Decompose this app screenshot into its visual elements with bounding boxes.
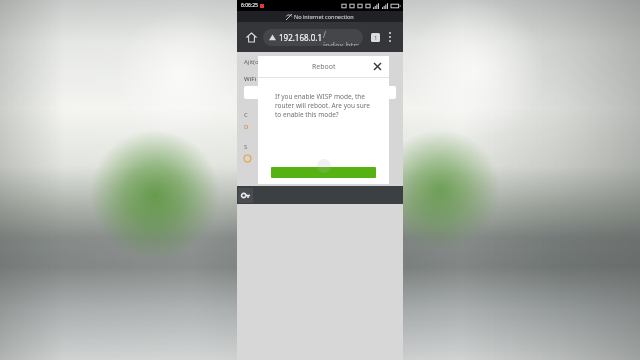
button[interactable]: Passwords bbox=[237, 186, 403, 204]
button[interactable] bbox=[271, 167, 376, 178]
button[interactable]: Passwords bbox=[238, 188, 253, 203]
button[interactable]: Home bbox=[243, 29, 259, 45]
staticText: If you enable WISP mode, the router will… bbox=[275, 92, 375, 119]
staticText: No internet connection bbox=[294, 13, 354, 20]
button[interactable]: 192.168.0.1 bbox=[263, 29, 363, 46]
button[interactable] bbox=[244, 86, 396, 99]
staticText: C bbox=[244, 111, 248, 119]
staticText: /index.htm bbox=[323, 29, 363, 46]
staticText: WiFi Password bbox=[244, 75, 286, 83]
button[interactable]: More options bbox=[383, 30, 397, 44]
button[interactable]: Close bbox=[371, 60, 384, 73]
staticText: 192.168.0.1 bbox=[279, 32, 323, 43]
staticText: Ajit(outer ) bbox=[244, 58, 274, 66]
staticText: D bbox=[244, 123, 249, 131]
staticText: 1 bbox=[374, 34, 378, 42]
staticText: Reboot bbox=[312, 62, 336, 72]
staticText: S bbox=[244, 143, 248, 151]
staticText: 6:06:25 bbox=[241, 2, 258, 9]
button[interactable]: Tabs bbox=[367, 29, 383, 45]
